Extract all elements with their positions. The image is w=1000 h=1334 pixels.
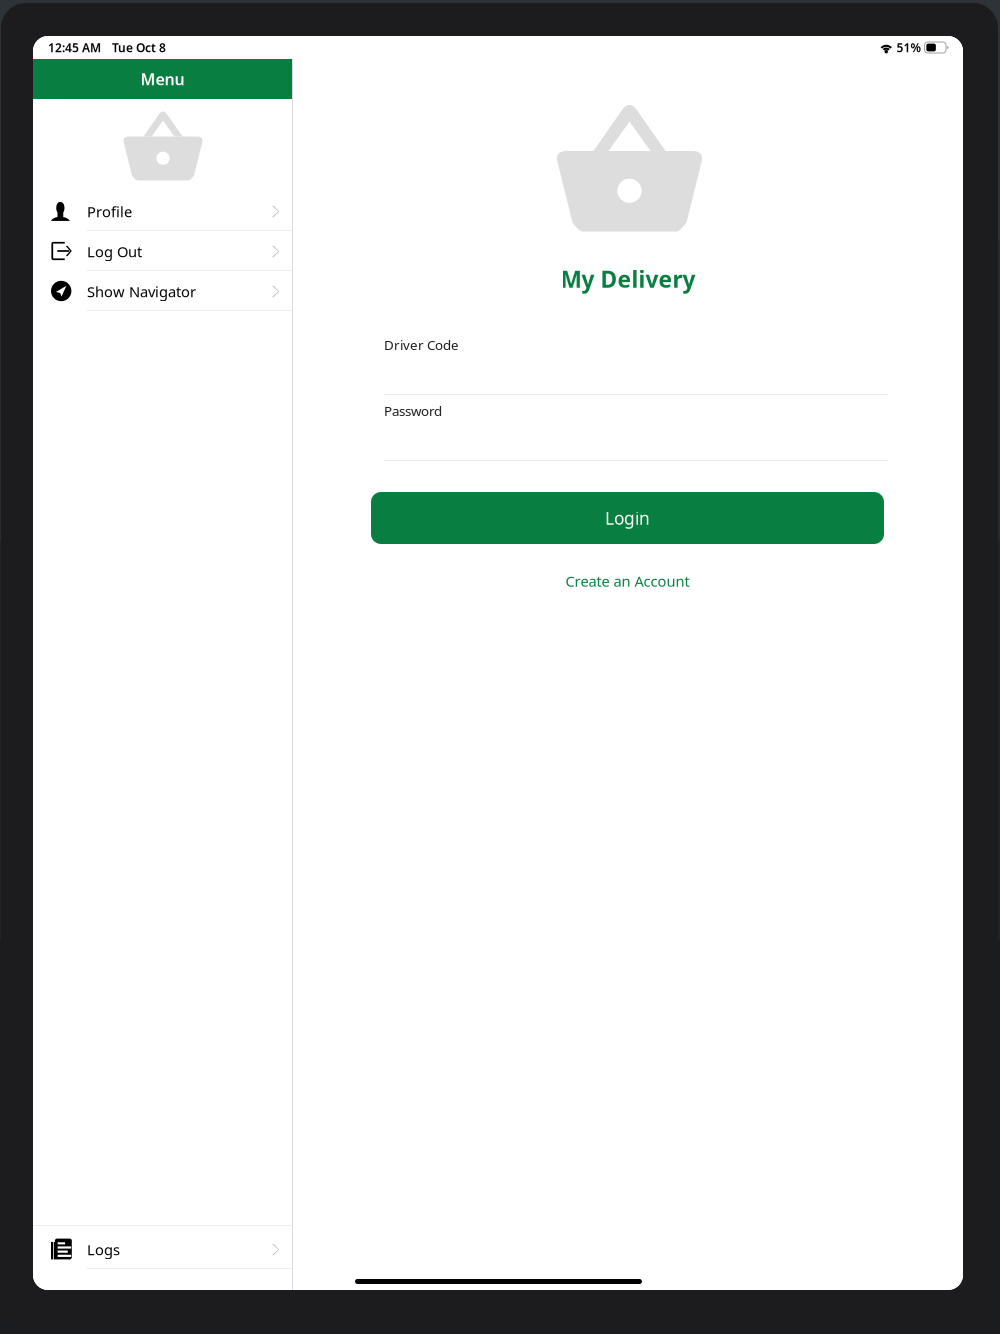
staticText: Create an Account (565, 571, 689, 591)
staticText: Tue Oct 8 (112, 39, 166, 55)
button[interactable]: Show Navigator (33, 271, 292, 311)
staticText: Log Out (87, 242, 142, 261)
staticText: Menu (140, 68, 184, 90)
button[interactable]: Logs (33, 1229, 292, 1269)
staticText: 12:45 AM (48, 39, 101, 55)
button[interactable]: Login (371, 492, 884, 544)
staticText: Driver Code (384, 336, 459, 354)
staticText: Password (384, 402, 442, 420)
staticText: Profile (87, 202, 132, 221)
staticText: Show Navigator (87, 282, 196, 301)
button[interactable]: Create an Account (371, 567, 884, 595)
staticText: 51% (896, 39, 921, 55)
staticText: Logs (87, 1240, 120, 1259)
staticText: Login (605, 506, 650, 529)
button[interactable]: Profile (33, 191, 292, 231)
button[interactable]: Log Out (33, 231, 292, 271)
button[interactable]: Menu (33, 59, 292, 99)
staticText: My Delivery (560, 264, 695, 294)
